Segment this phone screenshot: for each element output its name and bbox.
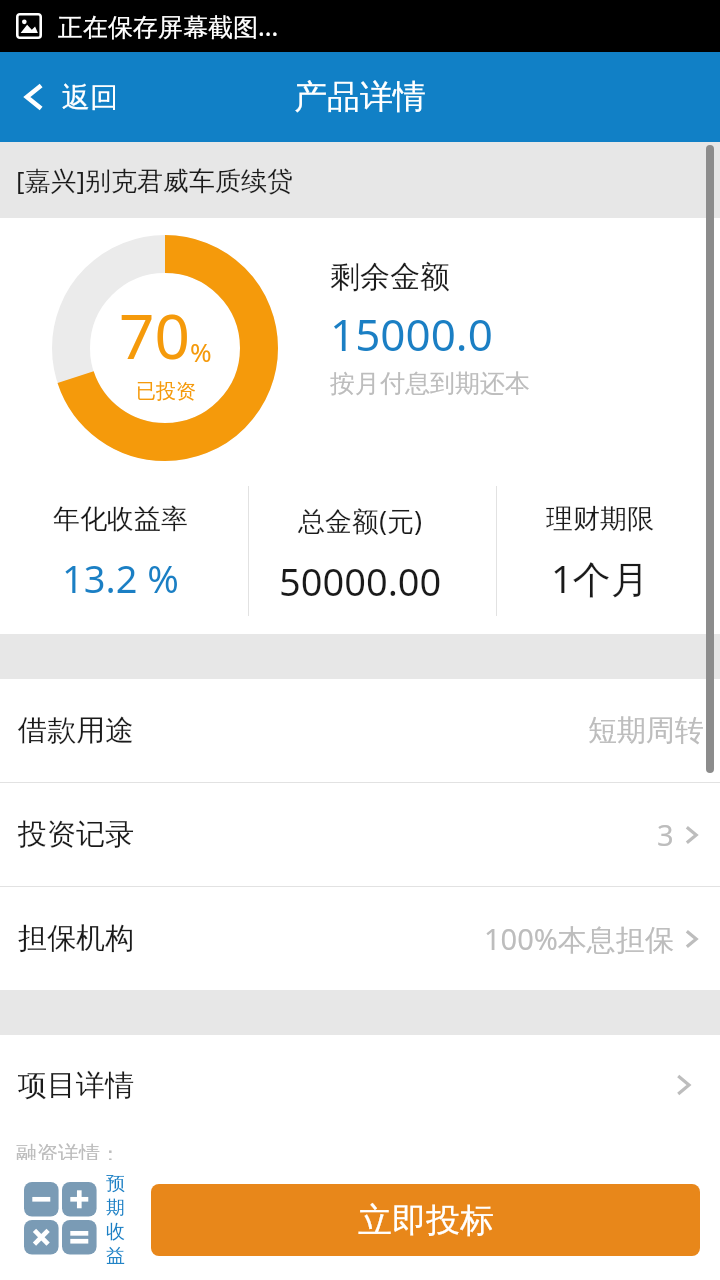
button[interactable]: 担保机构 (0, 887, 720, 990)
staticText: 总金额(元) (298, 502, 423, 539)
button[interactable]: 预期收益计算器 (0, 1164, 135, 1276)
staticText: 1个月 (551, 552, 649, 604)
staticText: 年化收益率 (53, 502, 188, 536)
staticText: 借款用途 (18, 712, 134, 749)
staticText: [嘉兴]别克君威车质续贷 (16, 162, 294, 198)
staticText: 返回 (62, 80, 118, 115)
staticText: 项目详情 (18, 1067, 134, 1104)
staticText: 13.2 % (62, 552, 179, 604)
staticText: 按月付息到期还本 (330, 368, 530, 399)
button[interactable]: 返回 (0, 52, 134, 142)
staticText: 立即投标 (358, 1199, 494, 1242)
staticText: 剩余金额 (330, 258, 450, 296)
staticText: 益 (106, 1244, 125, 1268)
button[interactable]: 投资记录 (0, 783, 720, 886)
staticText: % (190, 334, 212, 369)
staticText: 3 (657, 815, 674, 854)
staticText: 70 (119, 293, 190, 377)
staticText: 短期周转 (588, 712, 704, 749)
button[interactable]: 项目详情 (0, 1035, 720, 1135)
staticText: 100%本息担保 (484, 919, 674, 959)
staticText: 产品详情 (294, 76, 426, 118)
staticText: 收 (106, 1220, 125, 1244)
button[interactable]: 借款用途 (0, 679, 720, 782)
staticText: 担保机构 (18, 920, 134, 957)
staticText: 预 (106, 1172, 125, 1196)
staticText: 已投资 (136, 379, 196, 404)
staticText: 15000.0 (330, 304, 493, 364)
staticText: 50000.00 (279, 555, 442, 607)
staticText: 正在保存屏幕截图... (58, 9, 279, 43)
staticText: 期 (106, 1196, 125, 1220)
staticText: 理财期限 (546, 502, 654, 536)
staticText: 投资记录 (18, 816, 134, 853)
staticText: 融资详情： (16, 1141, 121, 1160)
button[interactable]: 立即投标 (151, 1184, 700, 1256)
